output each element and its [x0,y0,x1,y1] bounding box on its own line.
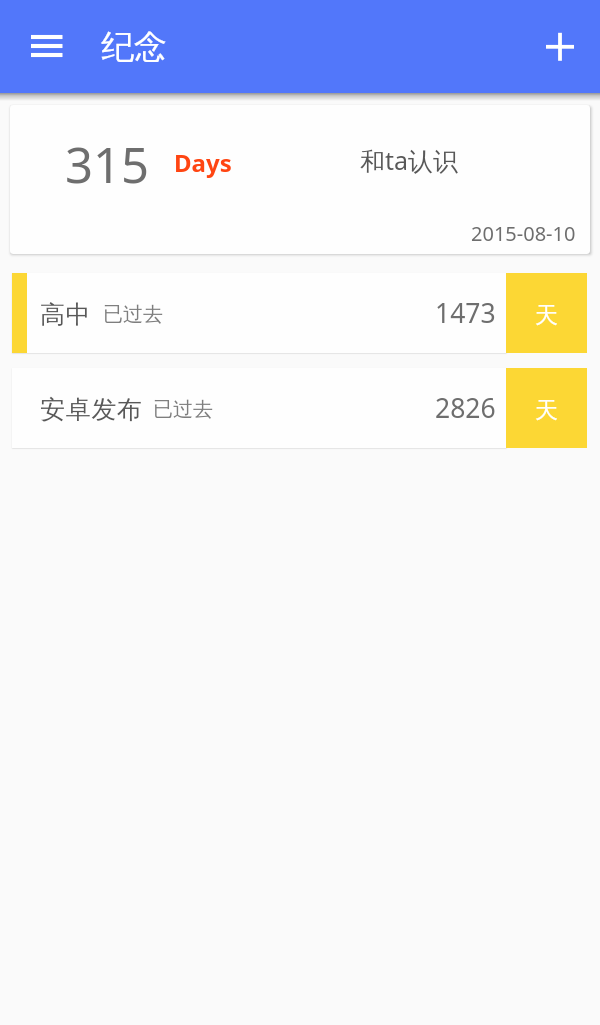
staticText: 天 [535,301,558,330]
staticText: 1473 [435,295,496,331]
button[interactable]: 安卓发布 [12,368,587,448]
staticText: 安卓发布 [40,394,143,425]
button[interactable]: Add anniversary [534,21,586,73]
staticText: 315 [65,131,150,198]
staticText: 天 [535,396,558,425]
staticText: 高中 [40,299,92,330]
staticText: Days [174,146,232,179]
button[interactable]: 315 [10,105,590,254]
staticText: 2015-08-10 [471,220,576,247]
button[interactable]: 高中 [12,273,587,353]
staticText: 2826 [435,390,496,426]
button[interactable]: Open navigation menu [21,21,73,73]
staticText: 已过去 [103,302,163,327]
staticText: 已过去 [153,397,213,422]
staticText: 纪念 [101,26,167,68]
staticText: 和ta认识 [360,143,459,177]
